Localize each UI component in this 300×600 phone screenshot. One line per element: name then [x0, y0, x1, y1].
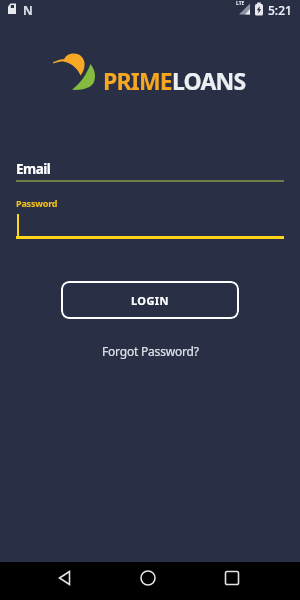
button[interactable]: LOGIN — [61, 281, 239, 319]
button[interactable] — [200, 562, 300, 600]
staticText: Email — [16, 160, 51, 178]
staticText: LTE — [236, 0, 245, 7]
staticText: N — [23, 2, 33, 18]
button[interactable] — [0, 562, 100, 600]
staticText: 5:21 — [268, 2, 292, 18]
staticText: PRIMELOANS — [103, 65, 246, 96]
staticText: LOGIN — [131, 293, 169, 308]
button[interactable]: Forgot Password? — [102, 343, 199, 359]
staticText: Password — [16, 197, 58, 209]
button[interactable] — [100, 562, 200, 600]
